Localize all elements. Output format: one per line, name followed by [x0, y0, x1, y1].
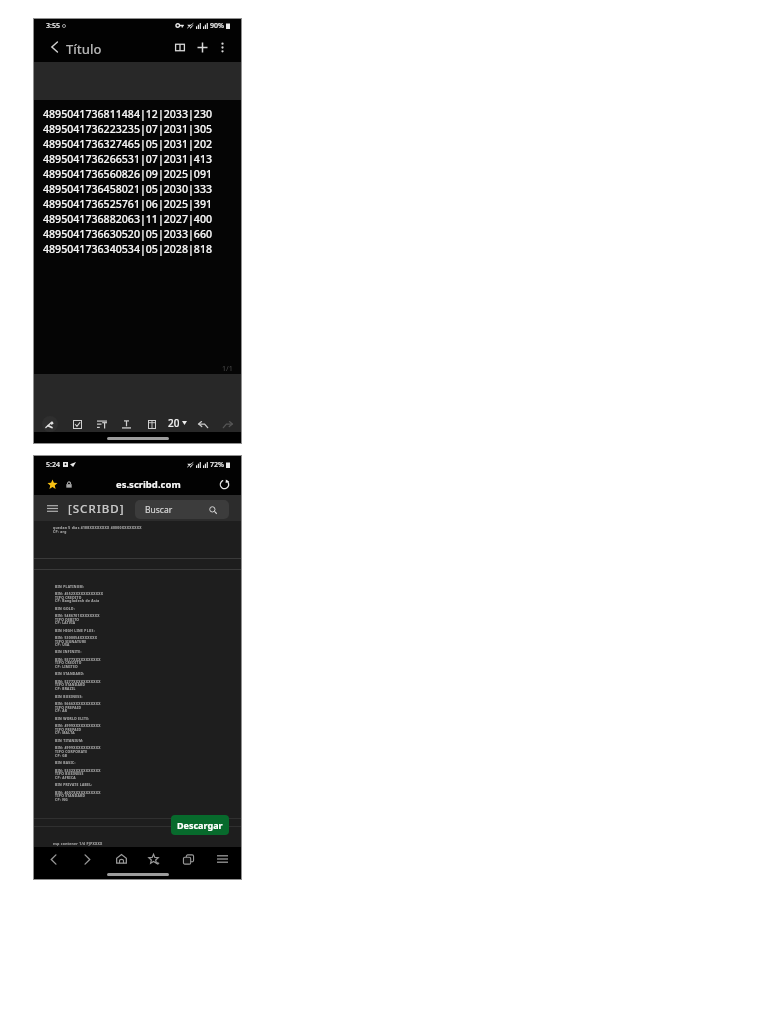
staticText: 4895041736630520|05|2033|660 — [43, 227, 213, 241]
staticText: 5:24 — [46, 460, 60, 470]
button[interactable]: Reload — [214, 473, 234, 495]
staticText: CP: LATVIA — [55, 620, 76, 624]
staticText: Título — [66, 40, 102, 58]
button[interactable]: Text format — [116, 414, 136, 434]
staticText: CP: NG — [55, 797, 68, 801]
staticText: BIN: 5486701XXXXXXXX — [55, 613, 100, 617]
button[interactable]: Bookmarks — [144, 849, 164, 869]
staticText: BIN: 5332XXXXXXXXXXX — [55, 768, 101, 772]
staticText: BIN: 5300054XXXXXXX — [55, 635, 98, 639]
staticText: BIN WORLD ELITE: — [55, 716, 90, 720]
staticText: CP: AFRICA — [55, 775, 76, 779]
staticText: TIPO CORPORATE — [55, 749, 88, 753]
button[interactable]: Paragraph — [92, 414, 112, 434]
staticText: CP: arg — [53, 529, 67, 533]
staticText: CP: USA — [55, 642, 70, 646]
staticText: 4895041736266531|07|2031|413 — [43, 152, 213, 166]
staticText: 90% — [210, 21, 224, 31]
button[interactable]: Forward — [77, 849, 97, 869]
staticText: TIPO DEBITO — [55, 617, 80, 621]
staticText: CP: BRAZIL — [55, 686, 76, 690]
button[interactable]: Back — [43, 849, 63, 869]
staticText: esp contener 1/4 PJPXXXX — [53, 841, 103, 845]
button[interactable]: Draw — [40, 414, 60, 434]
staticText: 3:55 — [46, 21, 60, 31]
button[interactable]: Undo — [193, 414, 213, 434]
button[interactable]: Buscar — [135, 500, 229, 519]
staticText: BIN: 5577XXXXXXXXXXX — [55, 657, 101, 661]
staticText: CP: MALTA — [55, 730, 75, 734]
staticText: TIPO SIGNATURE — [55, 639, 87, 643]
staticText: 4895041736560826|09|2025|091 — [43, 167, 213, 181]
staticText: TIPO CREDITO — [55, 595, 82, 599]
staticText: TIPO STANDARD — [55, 682, 86, 686]
staticText: 4895041736525761|06|2025|391 — [43, 197, 213, 211]
staticText: TIPO PREPAID — [55, 705, 82, 709]
button[interactable]: Bookmark — [43, 473, 61, 495]
staticText: [SCRIBD] — [68, 501, 125, 517]
staticText: Descargar — [177, 819, 223, 831]
staticText: BIN: 4999XXXXXXXXXXX — [55, 745, 101, 749]
staticText: 1/1 — [222, 364, 233, 374]
staticText: 20 — [168, 416, 180, 430]
button[interactable]: Back — [46, 32, 62, 62]
staticText: CP: GB — [55, 753, 68, 757]
staticText: CP: LIMITED — [55, 664, 78, 668]
staticText: BIN BASIC: — [55, 760, 76, 764]
staticText: TIPO CREDITO — [55, 660, 82, 664]
staticText: BIN: 4552XXXXXXXXXXXX — [55, 591, 104, 595]
staticText: BIN: 4007XXXXXXXXXXX — [55, 790, 101, 794]
staticText: BIN PRIVATE LABEL: — [55, 782, 93, 786]
button[interactable]: Add — [193, 32, 212, 62]
button[interactable]: Descargar — [171, 815, 229, 835]
staticText: CP: Bangladesh de Asia — [55, 598, 100, 602]
staticText: quedan 5 dias 4188XXXXXXXX 40000XXXXXXXX — [53, 525, 142, 529]
staticText: BIN BUSINESS: — [55, 694, 83, 698]
button[interactable]: 20 — [168, 415, 187, 431]
button[interactable]: Home — [111, 849, 131, 869]
button[interactable]: Redo — [217, 414, 237, 434]
staticText: BIN STANDARD: — [55, 671, 85, 675]
staticText: BIN INFINITE: — [55, 649, 82, 653]
staticText: 4895041736327465|05|2031|202 — [43, 137, 213, 151]
button[interactable]: Tabs — [178, 849, 198, 869]
button[interactable]: More options — [215, 32, 229, 62]
staticText: 4895041736811484|12|2033|230 — [43, 107, 213, 121]
staticText: es.scribd.com — [116, 478, 181, 491]
staticText: BIN GOLD: — [55, 606, 75, 610]
staticText: BIN HIGH LINE PLUS: — [55, 628, 95, 632]
staticText: TIPO BUSINESS — [55, 771, 84, 775]
staticText: 4895041736223235|07|2031|305 — [43, 122, 213, 136]
staticText: 72% — [210, 460, 224, 470]
button[interactable]: Checkbox — [67, 414, 87, 434]
staticText: CP: AR — [55, 708, 68, 712]
staticText: Buscar — [145, 504, 173, 516]
staticText: BIN: 4999XXXXXXXXXXX — [55, 723, 101, 727]
staticText: BIN PLATINUM: — [55, 584, 85, 588]
staticText: TIPO STANDARD — [55, 793, 86, 797]
staticText: BIN TITANIUM: — [55, 738, 84, 742]
button[interactable]: Table — [142, 414, 162, 434]
button[interactable]: Menu — [212, 849, 232, 869]
button[interactable]: Menu — [43, 495, 61, 522]
button[interactable]: Book view — [170, 32, 189, 62]
staticText: 4895041736458021|05|2030|333 — [43, 182, 213, 196]
staticText: TIPO PREPAID — [55, 727, 82, 731]
staticText: BIN: 5666XXXXXXXXXXX — [55, 701, 101, 705]
staticText: BIN: 5277XXXXXXXXXXX — [55, 679, 101, 683]
staticText: 4895041736882063|11|2027|400 — [43, 212, 213, 226]
staticText: 4895041736340534|05|2028|818 — [43, 242, 213, 256]
